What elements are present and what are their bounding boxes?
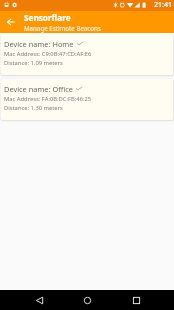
- staticText: Mac Address: C9:0B:47:CD:AF:E6: [4, 50, 92, 58]
- staticText: Manage Estimote Beacons: [24, 24, 101, 32]
- staticText: Mac Address: FA:0B:DC:FB:46:25: [4, 95, 92, 103]
- staticText: Distance: 1.30 meters: [4, 104, 63, 112]
- staticText: Device name: Office: [4, 84, 73, 94]
- staticText: Distance: 1.09 meters: [4, 59, 63, 67]
- button[interactable]: Device name: Home: [1, 34, 173, 75]
- button[interactable]: Recent apps: [126, 290, 146, 310]
- button[interactable]: Home: [77, 290, 97, 310]
- staticText: 21:41: [154, 0, 172, 10]
- button[interactable]: Back: [0, 11, 22, 33]
- button[interactable]: Back: [29, 290, 49, 310]
- staticText: Device name: Home: [4, 39, 74, 49]
- staticText: Sensorflare: [24, 12, 71, 23]
- button[interactable]: Device name: Office: [1, 79, 173, 120]
